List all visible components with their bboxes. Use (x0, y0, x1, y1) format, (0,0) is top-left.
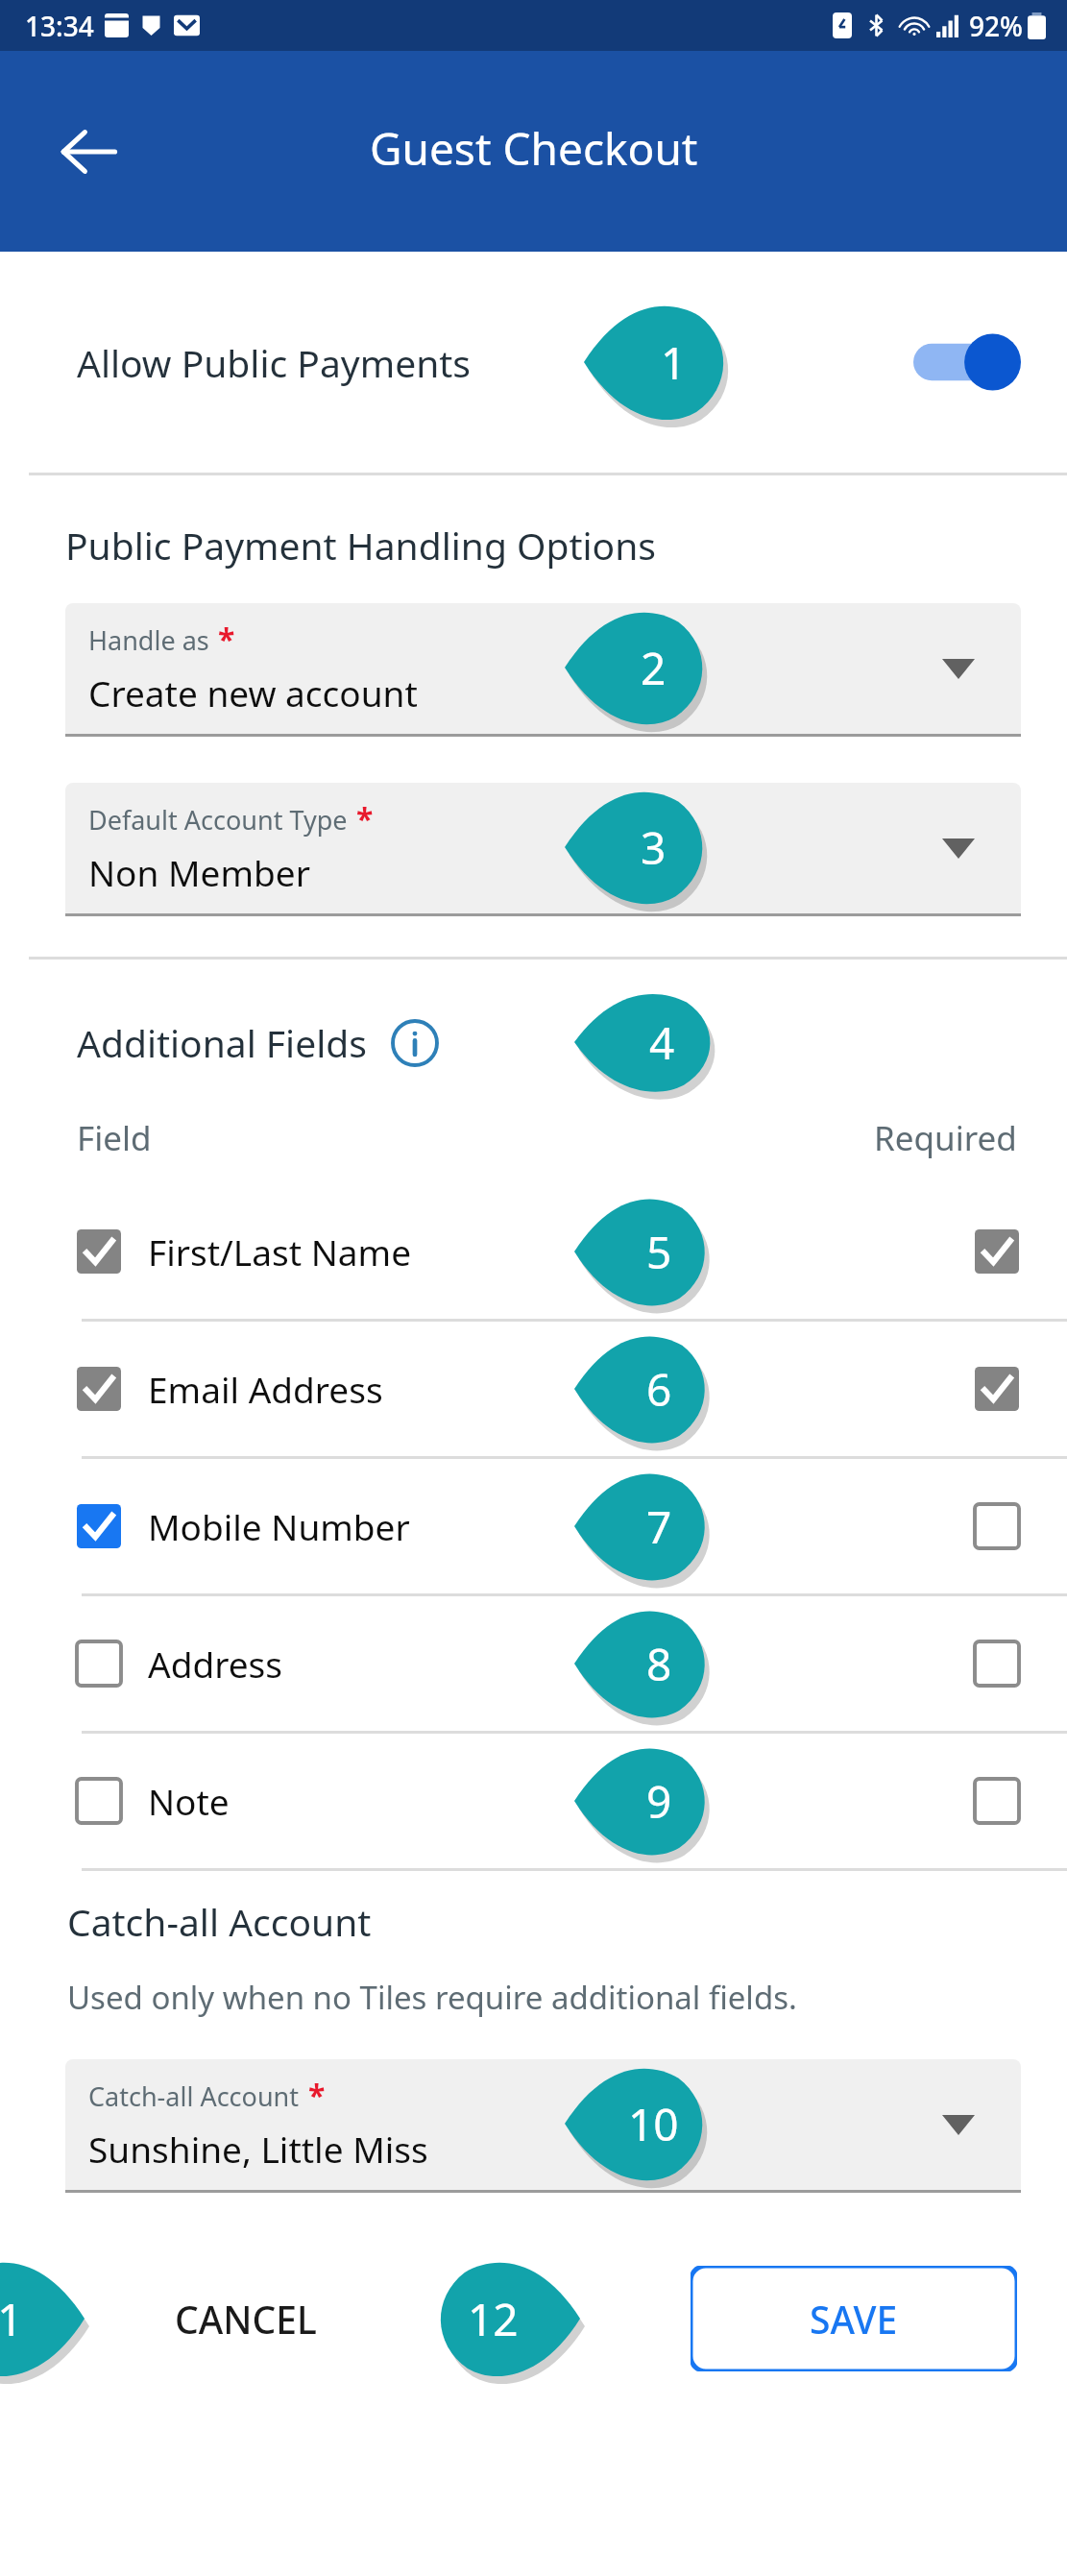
staticText: * (308, 2075, 326, 2117)
button[interactable]: Information about additional fields (390, 1018, 440, 1068)
button[interactable]: Mobile Number (77, 1504, 121, 1548)
staticText: Sunshine, Little Miss (88, 2125, 428, 2173)
staticText: Used only when no Tiles require addition… (67, 1976, 797, 2019)
staticText: Field (77, 1115, 152, 1161)
button[interactable]: SAVE (691, 2266, 1017, 2371)
button[interactable]: First/Last Name (77, 1229, 121, 1274)
button[interactable]: Handle as (65, 603, 1021, 737)
button[interactable]: CANCEL (142, 2269, 350, 2369)
staticText: 5 (646, 1222, 672, 1282)
staticText: 4 (649, 1012, 675, 1073)
button[interactable]: Back (48, 111, 129, 192)
staticText: 8 (646, 1634, 672, 1694)
button[interactable]: Email Address (77, 1367, 121, 1411)
button[interactable]: Mobile Number required (975, 1504, 1019, 1548)
button[interactable]: Allow Public Payments (0, 252, 1067, 473)
button[interactable]: Note (0, 1734, 1067, 1868)
staticText: Handle as (88, 622, 209, 658)
staticText: 92% (969, 8, 1023, 44)
staticText: 10 (628, 2094, 679, 2154)
button[interactable]: Address required (975, 1641, 1019, 1686)
staticText: 13:34 (25, 8, 94, 44)
staticText: First/Last Name (148, 1227, 412, 1276)
staticText: 2 (641, 638, 667, 698)
staticText: Allow Public Payments (77, 337, 472, 388)
staticText: Catch-all Account (88, 2078, 300, 2114)
staticText: 11 (0, 2289, 23, 2349)
staticText: CANCEL (175, 2294, 317, 2345)
staticText: Mobile Number (148, 1502, 410, 1550)
button[interactable]: Address (0, 1596, 1067, 1731)
staticText: Email Address (148, 1365, 383, 1413)
staticText: Non Member (88, 848, 310, 896)
button[interactable]: Address (77, 1641, 121, 1686)
button[interactable]: First/Last Name (0, 1184, 1067, 1319)
button[interactable]: Note required (975, 1779, 1019, 1823)
staticText: 7 (646, 1496, 672, 1557)
staticText: 12 (468, 2289, 519, 2349)
staticText: Address (148, 1640, 283, 1688)
staticText: 6 (646, 1359, 672, 1420)
staticText: Required (874, 1115, 1017, 1161)
staticText: SAVE (810, 2294, 898, 2345)
staticText: Guest Checkout (370, 118, 698, 179)
button[interactable]: Catch-all Account (65, 2059, 1021, 2193)
button[interactable]: First/Last Name required (975, 1229, 1019, 1274)
staticText: * (218, 619, 235, 661)
button[interactable]: Default Account Type (65, 783, 1021, 916)
staticText: * (356, 798, 374, 840)
staticText: Create new account (88, 668, 418, 717)
staticText: Public Payment Handling Options (65, 520, 656, 571)
staticText: Default Account Type (88, 802, 348, 838)
staticText: 3 (641, 817, 667, 878)
button[interactable]: Note (77, 1779, 121, 1823)
staticText: Additional Fields (77, 1017, 367, 1068)
button[interactable]: Email Address required (975, 1367, 1019, 1411)
staticText: Note (148, 1777, 230, 1825)
staticText: Catch-all Account (67, 1896, 372, 1947)
button[interactable]: Email Address (0, 1322, 1067, 1456)
staticText: 1 (661, 332, 687, 393)
button[interactable]: Mobile Number (0, 1459, 1067, 1593)
staticText: 9 (646, 1771, 672, 1832)
